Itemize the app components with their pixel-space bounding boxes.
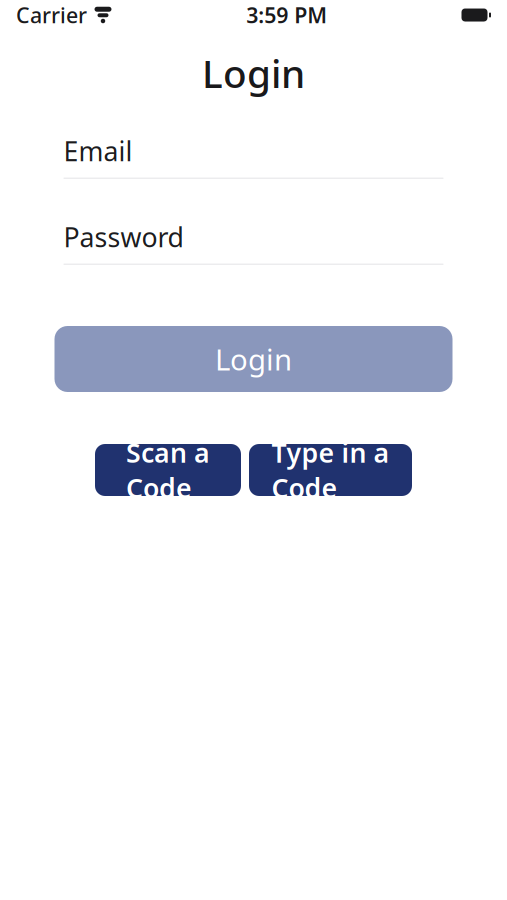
button[interactable]: Login bbox=[54, 326, 452, 392]
staticText: Email bbox=[63, 133, 132, 169]
staticText: Login bbox=[202, 47, 305, 99]
button[interactable]: Type in a Code bbox=[249, 444, 412, 496]
staticText: 3:59 PM bbox=[246, 1, 327, 29]
staticText: Scan a Code bbox=[126, 435, 210, 505]
staticText: Login bbox=[215, 339, 292, 378]
staticText: Type in a Code bbox=[271, 435, 389, 505]
staticText: Carrier bbox=[16, 1, 87, 29]
staticText: Password bbox=[63, 219, 183, 255]
button[interactable]: Scan a Code bbox=[95, 444, 241, 496]
